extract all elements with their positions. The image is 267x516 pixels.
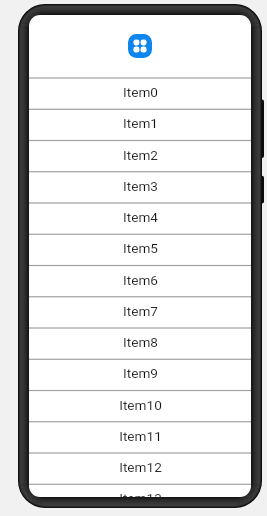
staticText: Item8 bbox=[123, 334, 158, 350]
staticText: Item0 bbox=[123, 84, 158, 100]
button[interactable]: Item1 bbox=[29, 110, 251, 140]
staticText: Item5 bbox=[123, 240, 158, 256]
button[interactable]: Item4 bbox=[29, 204, 251, 234]
button[interactable]: Item2 bbox=[29, 141, 251, 171]
staticText: Item13 bbox=[119, 490, 162, 497]
button[interactable]: Item5 bbox=[29, 235, 251, 265]
staticText: Item6 bbox=[123, 271, 158, 287]
button[interactable]: Item9 bbox=[29, 360, 251, 390]
button[interactable]: Apps bbox=[128, 34, 152, 58]
button[interactable]: Item10 bbox=[29, 391, 251, 421]
staticText: Item9 bbox=[123, 365, 158, 381]
staticText: Item12 bbox=[119, 459, 162, 475]
staticText: Item4 bbox=[123, 209, 158, 225]
staticText: Item3 bbox=[123, 178, 158, 194]
staticText: Item7 bbox=[123, 303, 158, 319]
button[interactable]: Item3 bbox=[29, 172, 251, 202]
button[interactable]: Item13 bbox=[29, 485, 251, 497]
button[interactable]: Item7 bbox=[29, 297, 251, 327]
staticText: Item1 bbox=[123, 115, 158, 131]
staticText: Item2 bbox=[123, 146, 158, 162]
button[interactable]: Item11 bbox=[29, 422, 251, 452]
button[interactable]: Item12 bbox=[29, 454, 251, 484]
button[interactable]: Item6 bbox=[29, 266, 251, 296]
button[interactable]: Item8 bbox=[29, 329, 251, 359]
staticText: Item11 bbox=[119, 428, 162, 444]
staticText: Item10 bbox=[119, 396, 162, 412]
button[interactable]: Item0 bbox=[29, 79, 251, 109]
